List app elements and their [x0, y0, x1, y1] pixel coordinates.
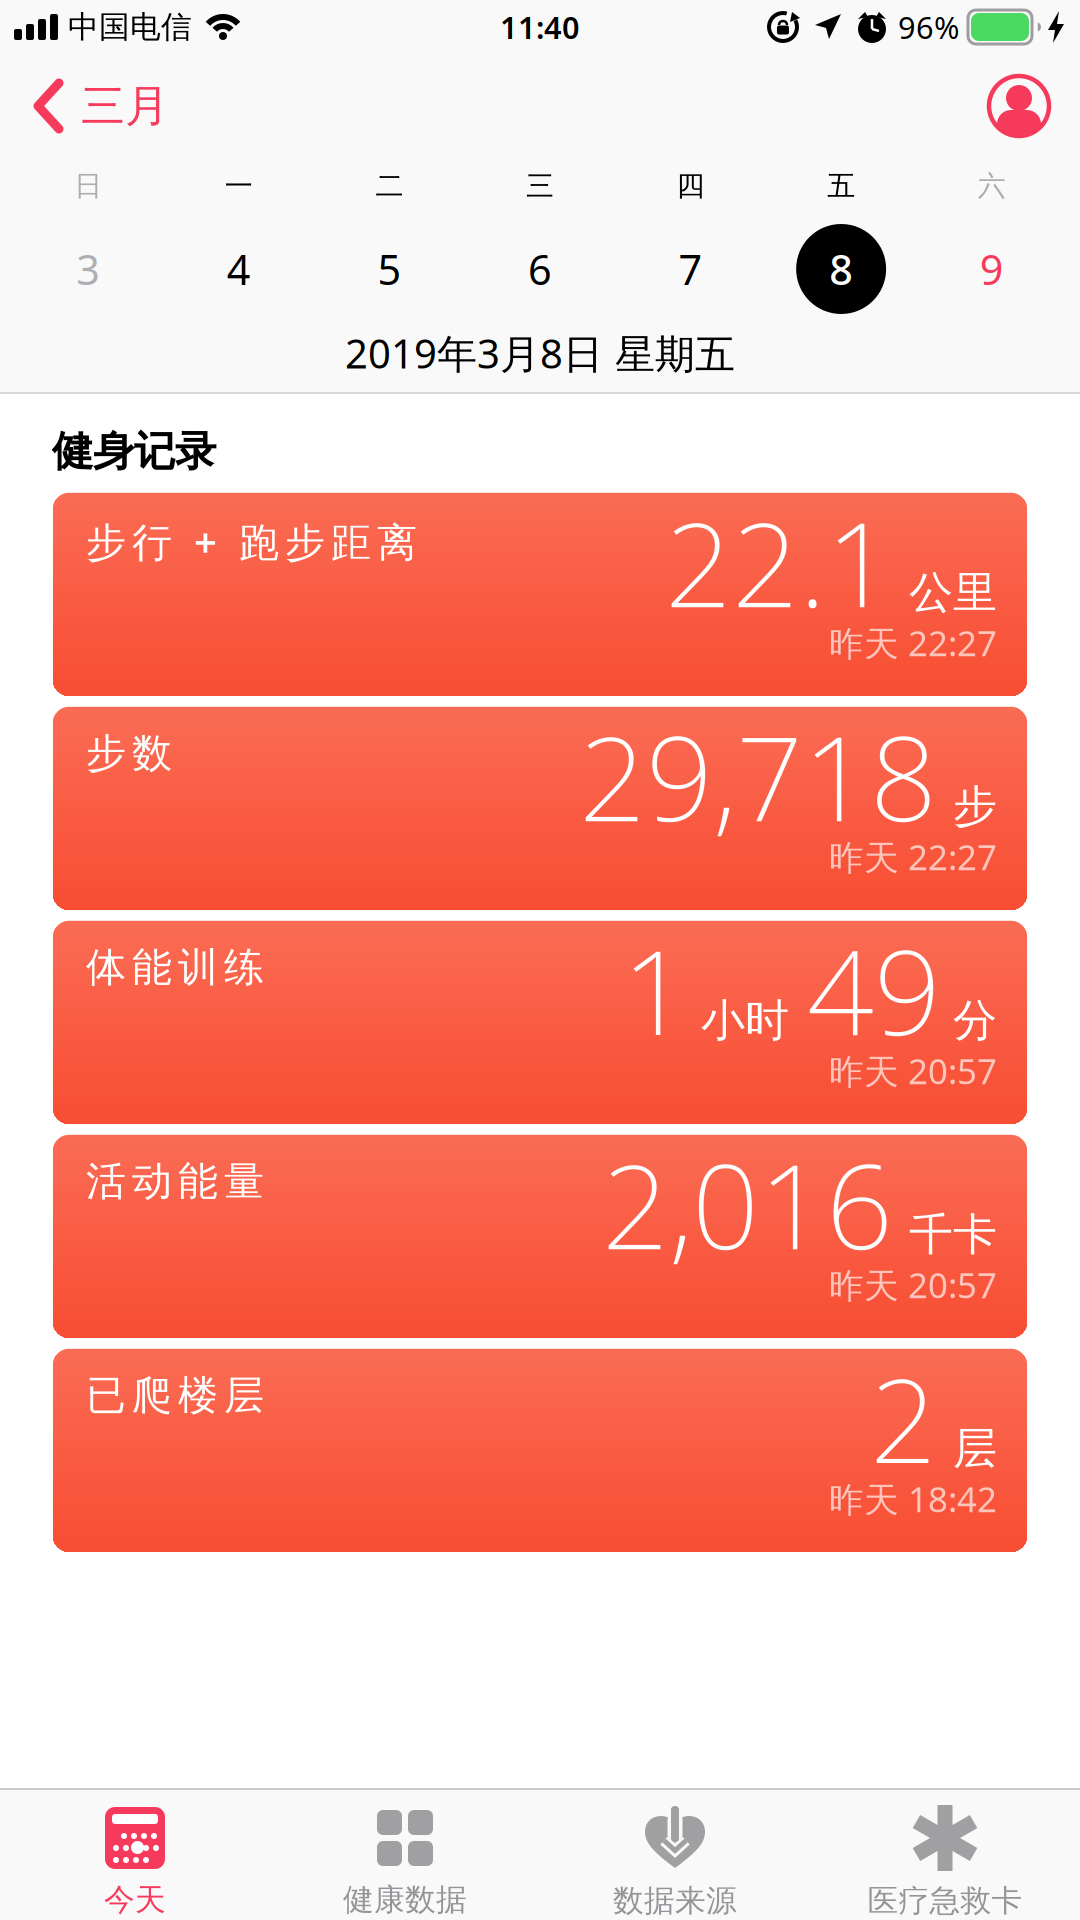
- staticText: 2019年3月8日 星期五: [345, 326, 735, 379]
- staticText: 29,718: [579, 698, 937, 854]
- staticText: 三月: [81, 79, 169, 133]
- staticText: 公里: [909, 565, 997, 619]
- button[interactable]: 步数: [53, 707, 1027, 910]
- staticText: 49: [807, 912, 941, 1068]
- staticText: 22.1: [665, 484, 893, 640]
- staticText: 层: [953, 1421, 997, 1475]
- button[interactable]: 3月8日 已选定: [766, 224, 916, 314]
- staticText: 昨天 22:27: [829, 834, 997, 880]
- staticText: 分: [953, 993, 997, 1047]
- staticText: 5: [377, 242, 401, 296]
- button[interactable]: 健康数据: [270, 1807, 540, 1919]
- button[interactable]: 步行 + 跑步距离: [53, 493, 1027, 696]
- button[interactable]: 3月4日: [164, 242, 314, 296]
- staticText: 千卡: [909, 1207, 997, 1261]
- staticText: 步数: [86, 729, 172, 778]
- button[interactable]: 3月3日: [13, 242, 164, 296]
- button[interactable]: 3月9日: [916, 242, 1067, 296]
- button[interactable]: 个人资料: [989, 76, 1049, 136]
- staticText: 7: [679, 242, 703, 296]
- button[interactable]: 3月6日: [465, 242, 615, 296]
- staticText: 昨天 20:57: [829, 1048, 997, 1094]
- staticText: 日: [74, 169, 102, 203]
- staticText: 活动能量: [86, 1157, 264, 1206]
- staticText: 六: [978, 169, 1006, 203]
- staticText: 五: [827, 169, 855, 203]
- button[interactable]: 医疗急救卡: [810, 1806, 1080, 1920]
- button[interactable]: 体能训练: [53, 921, 1027, 1124]
- staticText: 已爬楼层: [86, 1371, 264, 1420]
- staticText: 昨天 20:57: [829, 1262, 997, 1308]
- button[interactable]: 返回三月: [33, 78, 169, 134]
- button[interactable]: 数据来源: [540, 1806, 810, 1920]
- staticText: 健身记录: [52, 426, 216, 477]
- staticText: 96%: [898, 7, 959, 47]
- staticText: 9: [980, 242, 1004, 296]
- staticText: 6: [528, 242, 552, 296]
- staticText: 1: [622, 912, 689, 1068]
- staticText: 一: [225, 169, 253, 203]
- staticText: 8: [829, 242, 853, 296]
- staticText: 四: [677, 169, 705, 203]
- staticText: 11:40: [500, 7, 580, 47]
- staticText: 2: [870, 1340, 937, 1496]
- staticText: 数据来源: [613, 1882, 737, 1920]
- staticText: 今天: [104, 1881, 166, 1919]
- button[interactable]: 3月5日: [314, 242, 465, 296]
- staticText: 小时: [701, 993, 789, 1047]
- staticText: 三: [526, 169, 554, 203]
- staticText: 中国电信: [68, 8, 192, 46]
- staticText: 步: [953, 779, 997, 833]
- staticText: 3: [76, 242, 100, 296]
- staticText: 4: [227, 242, 251, 296]
- button[interactable]: 3月7日: [615, 242, 766, 296]
- staticText: 昨天 22:27: [829, 620, 997, 666]
- staticText: 健康数据: [343, 1881, 467, 1919]
- staticText: 2,016: [602, 1126, 893, 1282]
- button[interactable]: 已爬楼层: [53, 1349, 1027, 1552]
- staticText: 昨天 18:42: [829, 1476, 997, 1522]
- staticText: 二: [375, 169, 403, 203]
- staticText: 步行 + 跑步距离: [86, 515, 417, 568]
- staticText: 体能训练: [86, 943, 264, 992]
- staticText: 医疗急救卡: [867, 1882, 1022, 1920]
- button[interactable]: 活动能量: [53, 1135, 1027, 1338]
- button[interactable]: 今天: [0, 1807, 270, 1919]
